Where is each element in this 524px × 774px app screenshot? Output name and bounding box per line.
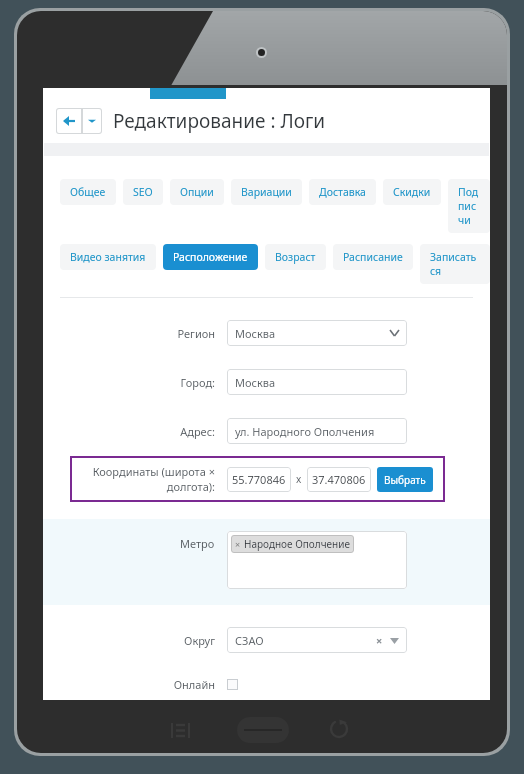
staticText: Москва (235, 326, 276, 341)
staticText: Выбрать (384, 473, 426, 487)
button[interactable] (227, 679, 238, 690)
button[interactable]: Back (322, 712, 356, 746)
button[interactable]: Москва (227, 369, 407, 395)
staticText: ул. Народного Ополчения (235, 424, 375, 439)
staticText: Метро (180, 536, 215, 551)
staticText: 37.470806 (312, 472, 366, 487)
button[interactable]: Выбрать (377, 467, 433, 492)
staticText: Расписание (343, 250, 403, 264)
staticText: Народное Ополчение (244, 537, 350, 551)
staticText: Записаться (430, 250, 480, 278)
staticText: Адрес: (180, 424, 215, 439)
button[interactable]: Расписание (333, 244, 413, 270)
staticText: Скидки (393, 185, 431, 199)
staticText: Расположение (173, 250, 248, 264)
button[interactable]: Recents (163, 713, 197, 747)
staticText: Регион (177, 326, 215, 341)
staticText: Возраст (275, 250, 316, 264)
button[interactable]: × (227, 531, 407, 589)
button[interactable]: Home (233, 711, 293, 749)
button[interactable]: Подписчи (448, 179, 490, 233)
button[interactable]: СЗАО (227, 627, 407, 653)
button[interactable]: 55.770846 (227, 467, 291, 492)
button[interactable]: SEO (123, 179, 163, 205)
staticText: Подписчи (458, 185, 480, 227)
button[interactable]: Опции (170, 179, 224, 205)
staticText: Вариации (241, 185, 292, 199)
button[interactable]: Общее (60, 179, 116, 205)
button[interactable]: Скидки (383, 179, 441, 205)
staticText: Москва (235, 375, 276, 390)
button[interactable]: More (82, 108, 102, 134)
staticText: × (235, 538, 241, 550)
button[interactable]: Видео занятия (60, 244, 156, 270)
staticText: 55.770846 (232, 472, 286, 487)
button[interactable]: Вариации (231, 179, 302, 205)
staticText: Видео занятия (70, 250, 146, 264)
button[interactable]: 37.470806 (307, 467, 371, 492)
staticText: SEO (133, 185, 153, 199)
button[interactable]: ул. Народного Ополчения (227, 418, 407, 444)
button[interactable]: Back (56, 108, 82, 134)
staticText: Округ (184, 633, 215, 648)
staticText: Координаты (широта × долгота): (70, 464, 215, 494)
staticText: Общее (70, 185, 106, 199)
button[interactable]: Москва (227, 320, 407, 346)
staticText: Город: (180, 375, 215, 390)
staticText: СЗАО (235, 633, 264, 648)
button[interactable]: Доставка (309, 179, 376, 205)
staticText: Онлайн (173, 677, 215, 692)
button[interactable]: Записаться (420, 244, 490, 284)
staticText: Опции (180, 185, 214, 199)
staticText: × (376, 633, 383, 648)
staticText: Доставка (319, 185, 366, 199)
button[interactable]: Возраст (265, 244, 326, 270)
staticText: Редактирование : Логи (113, 108, 326, 134)
staticText: x (296, 472, 302, 486)
button[interactable]: Расположение (163, 244, 258, 270)
